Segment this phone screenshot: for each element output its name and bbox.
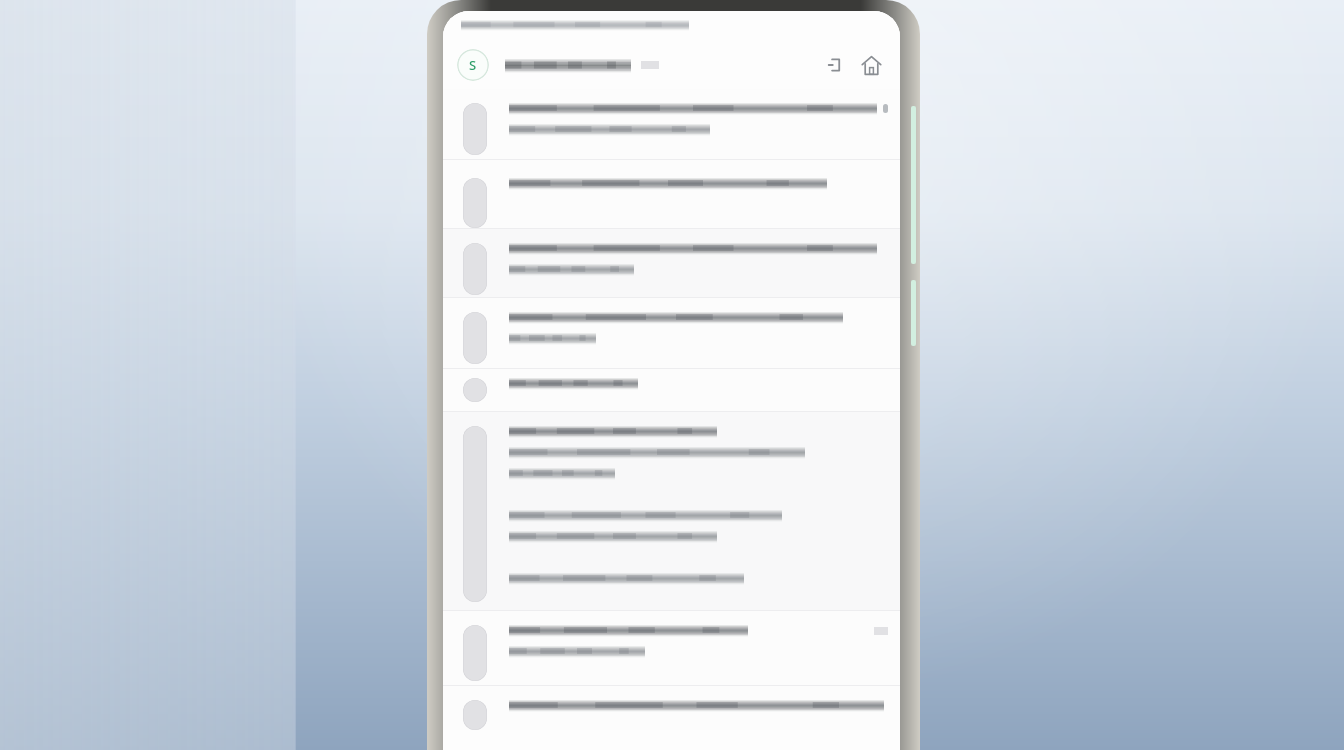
button[interactable]: [443, 412, 900, 610]
button[interactable]: [443, 89, 900, 159]
button[interactable]: Notifications: [820, 50, 850, 80]
button[interactable]: [443, 229, 900, 297]
button[interactable]: Home: [856, 50, 886, 80]
button[interactable]: [443, 160, 900, 228]
button[interactable]: [443, 686, 900, 730]
button[interactable]: [443, 611, 900, 685]
button[interactable]: Account: [457, 49, 489, 81]
button[interactable]: [443, 369, 900, 411]
button[interactable]: [443, 298, 900, 368]
staticText: S: [469, 56, 477, 74]
